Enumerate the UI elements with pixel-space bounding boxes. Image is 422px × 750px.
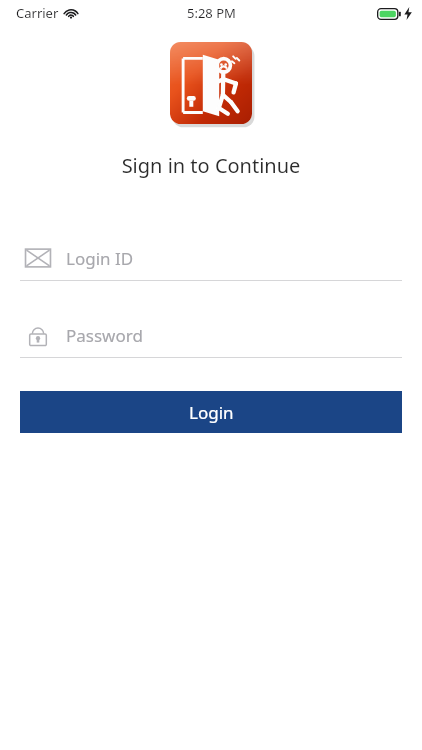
other: Password <box>20 320 56 350</box>
button[interactable]: Login ID <box>20 241 402 281</box>
staticText: Password <box>66 324 143 347</box>
staticText: Login <box>189 401 234 424</box>
staticText: Sign in to Continue <box>0 152 422 179</box>
other: App logo <box>170 42 252 124</box>
button[interactable]: Login <box>20 391 402 433</box>
staticText: Login ID <box>66 247 134 270</box>
staticText: Carrier <box>16 4 59 22</box>
other: Login ID <box>20 243 56 273</box>
button[interactable]: Password <box>20 318 402 358</box>
staticText: 5:28 PM <box>187 4 236 22</box>
